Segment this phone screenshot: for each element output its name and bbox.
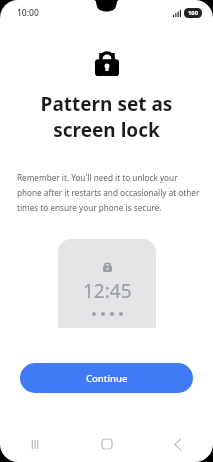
staticText: Pattern set as screen lock (12, 91, 201, 142)
staticText: 10:00 (17, 7, 39, 19)
button[interactable]: Back (142, 426, 213, 462)
staticText: Continue (86, 372, 128, 385)
staticText: Remember it. You'll need it to unlock yo… (17, 172, 200, 213)
button[interactable]: Home (71, 426, 142, 462)
staticText: 12:45 (83, 278, 132, 304)
staticText: 100 (188, 9, 198, 17)
button[interactable]: Continue (20, 363, 193, 393)
button[interactable]: Recent apps (0, 426, 71, 462)
